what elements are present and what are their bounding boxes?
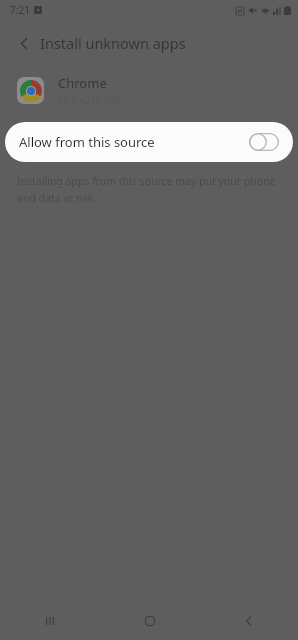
staticText: Chrome [58, 74, 107, 92]
staticText: Installing apps from this source may put… [17, 174, 276, 188]
staticText: Allow from this source [19, 133, 155, 151]
button[interactable]: Allow from this source [5, 122, 293, 162]
button[interactable]: Navigate up [8, 27, 40, 59]
staticText: and data at risk. [17, 191, 97, 205]
staticText: Install unknown apps [40, 33, 186, 53]
button[interactable]: Chrome [0, 66, 298, 114]
staticText: 7:21 [10, 3, 30, 17]
other: Allow from this source toggle, off [249, 133, 279, 151]
